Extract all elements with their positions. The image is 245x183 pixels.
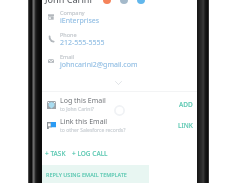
button[interactable]: Company [42, 8, 197, 26]
button[interactable]: Message [137, 0, 145, 4]
staticText: 212-555-5555 [60, 38, 105, 48]
staticText: iEnterprises [60, 16, 100, 26]
staticText: LINK [178, 121, 193, 130]
button[interactable]: REPLY USING EMAIL TEMPLATE [42, 165, 149, 183]
button[interactable]: + TASK [43, 147, 68, 159]
button[interactable]: Send email [120, 0, 128, 4]
staticText: Phone [60, 31, 77, 38]
staticText: Company [60, 9, 85, 16]
staticText: John Carini [45, 0, 92, 5]
staticText: Link this Email [60, 117, 108, 127]
staticText: + TASK [45, 149, 66, 157]
staticText: REPLY USING EMAIL TEMPLATE [46, 171, 127, 178]
staticText: Log this Email [60, 96, 106, 106]
staticText: to other Salesforce records? [60, 127, 126, 134]
button[interactable]: + LOG CALL [70, 147, 110, 159]
button[interactable]: LINK [177, 119, 194, 132]
staticText: johncarini2@gmail.com [60, 60, 138, 70]
button[interactable]: Phone [42, 30, 197, 48]
button[interactable]: Show more details [110, 77, 127, 89]
staticText: ADD [179, 100, 193, 109]
button[interactable]: Call [103, 0, 111, 4]
staticText: + LOG CALL [72, 149, 108, 157]
button[interactable]: Log this Email [42, 95, 197, 114]
button[interactable]: Link this Email [42, 116, 197, 135]
button[interactable]: ADD [178, 98, 194, 111]
staticText: Email [60, 53, 75, 60]
button[interactable]: Email [42, 52, 197, 70]
staticText: to John Carini? [60, 106, 94, 113]
